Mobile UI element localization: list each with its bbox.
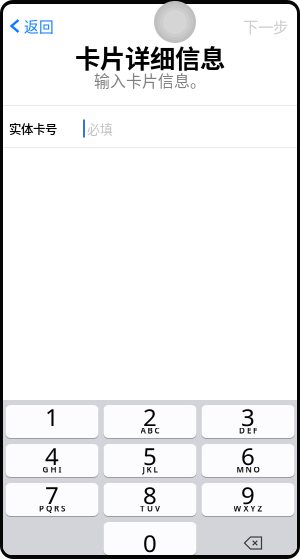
button[interactable]: 实体卡号 输入框 xyxy=(3,106,297,147)
staticText: 实体卡号 xyxy=(9,119,57,137)
button[interactable]: 3 xyxy=(201,405,294,438)
staticText: 必填 xyxy=(87,119,113,138)
button[interactable]: 9 xyxy=(201,483,294,516)
button[interactable]: 返回 xyxy=(3,15,54,37)
button[interactable]: Delete xyxy=(201,522,294,555)
staticText: 输入卡片信息。 xyxy=(94,68,206,91)
staticText: G H I xyxy=(42,464,61,475)
staticText: J K L xyxy=(142,464,157,475)
button[interactable]: 4 xyxy=(5,444,98,477)
staticText: A B C xyxy=(140,425,159,436)
staticText: 5 xyxy=(143,440,157,472)
staticText: 1 xyxy=(45,401,59,433)
button[interactable]: 8 xyxy=(103,483,196,516)
button[interactable]: 5 xyxy=(103,444,196,477)
button[interactable]: 7 xyxy=(5,483,98,516)
staticText: M N O xyxy=(236,464,259,475)
staticText: 8 xyxy=(143,479,157,511)
button[interactable]: 下一步 xyxy=(243,15,297,37)
staticText: T U V xyxy=(140,503,160,514)
staticText: 9 xyxy=(241,479,255,511)
staticText: 卡片详细信息 xyxy=(75,39,225,75)
button[interactable]: 2 xyxy=(103,405,196,438)
button[interactable]: 6 xyxy=(201,444,294,477)
staticText: 3 xyxy=(241,401,255,433)
staticText: W X Y Z xyxy=(233,503,262,514)
staticText: 7 xyxy=(45,479,59,511)
staticText: 0 xyxy=(143,527,157,559)
staticText: 返回 xyxy=(24,15,54,37)
staticText: D E F xyxy=(239,425,257,436)
staticText: P Q R S xyxy=(39,503,65,514)
staticText: 4 xyxy=(45,440,59,472)
button[interactable]: 0 xyxy=(103,522,196,555)
staticText: 6 xyxy=(241,440,255,472)
staticText: 2 xyxy=(143,401,157,433)
button[interactable]: 1 xyxy=(5,405,98,438)
staticText: 下一步 xyxy=(243,15,288,37)
